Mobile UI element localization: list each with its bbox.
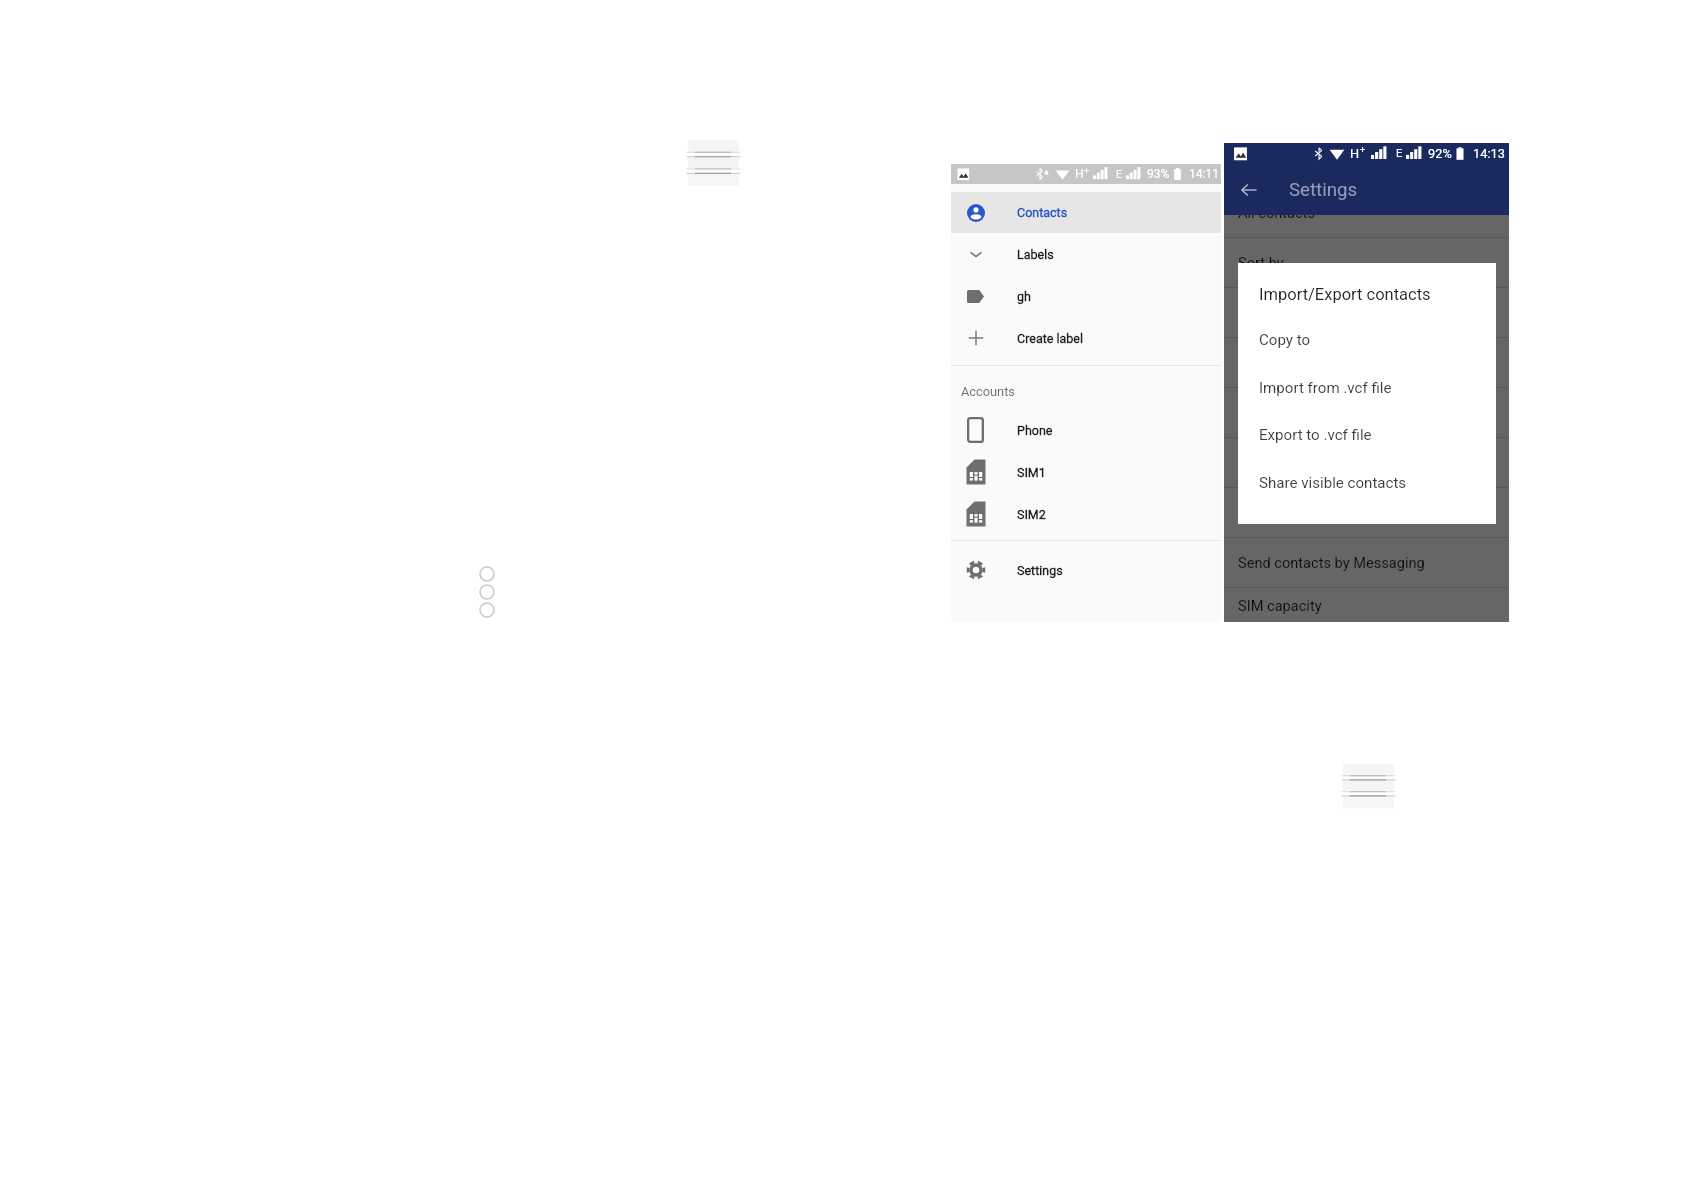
staticText: + [1084,166,1089,176]
button[interactable]: Sort by [1224,238,1509,287]
button[interactable]: Phone [951,409,1221,451]
staticText: Settings [1289,179,1358,201]
button[interactable]: Name format [1224,288,1509,337]
button[interactable]: Create label [951,317,1221,359]
staticText: Export to .vcf file [1259,426,1372,444]
staticText: gh [1017,289,1031,304]
staticText: SIM capacity [1238,597,1322,614]
staticText: Import/Export contacts [1259,285,1431,304]
staticText: Phone [1017,423,1053,438]
staticText: Create label [1017,331,1084,346]
staticText: 92% [1428,146,1452,161]
staticText: Contacts [1017,205,1068,220]
button[interactable]: Accounts [1224,438,1509,487]
button[interactable]: Share visible contacts [1238,468,1496,498]
staticText: Send contacts by Messaging [1238,554,1425,571]
button[interactable]: SIM1 [951,451,1221,493]
button[interactable]: gh [951,275,1221,317]
button[interactable]: Labels [951,233,1221,275]
button[interactable]: SIM2 [951,493,1221,535]
staticText: Labels [1017,247,1054,262]
button[interactable]: SIM capacity [1224,588,1509,622]
button[interactable]: Export to .vcf file [1238,420,1496,450]
button[interactable]: Import from .vcf file [1238,373,1496,403]
staticText: + [1360,144,1366,155]
staticText: SIM1 [1017,465,1046,480]
staticText: Sort by [1238,254,1284,271]
button[interactable]: Blocked numbers [1224,388,1509,437]
staticText: Settings [1017,563,1063,578]
button[interactable]: Back [1224,164,1274,215]
staticText: Share visible contacts [1259,474,1407,492]
staticText: H [1075,167,1084,181]
staticText: H [1350,146,1360,161]
button[interactable]: Import/Export contacts [1224,338,1509,387]
button[interactable]: Copy to [1238,325,1496,355]
staticText: SIM2 [1017,507,1046,522]
staticText: Copy to [1259,331,1311,349]
staticText: 14:11 [1189,167,1220,181]
button[interactable]: All contacts [1224,188,1509,237]
staticText: E [1396,147,1403,160]
button[interactable]: Send contacts by Messaging [1224,538,1509,587]
staticText: All contacts [1238,204,1315,221]
button[interactable]: Contacts [951,192,1221,233]
button[interactable]: Settings [951,549,1221,591]
staticText: E [1116,168,1123,180]
staticText: Import from .vcf file [1259,379,1392,397]
button[interactable]: Quick contact badge [1224,488,1509,537]
staticText: 14:13 [1473,146,1505,161]
staticText: Accounts [961,384,1015,399]
staticText: 93% [1147,167,1170,181]
